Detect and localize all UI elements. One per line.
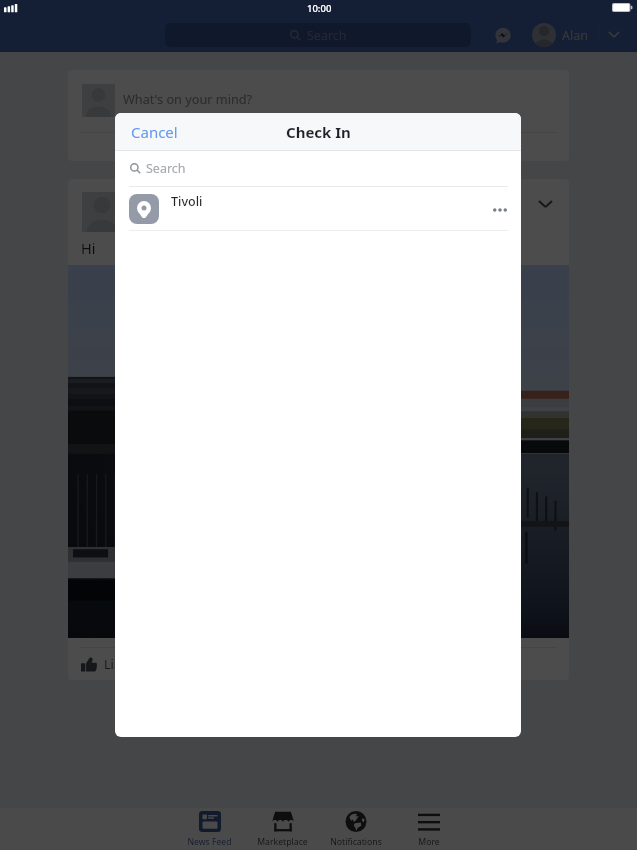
- staticText: Cancel: [131, 122, 178, 142]
- staticText: 10:00: [307, 2, 332, 15]
- staticText: Just now: [131, 215, 175, 230]
- staticText: Notifications: [330, 836, 382, 848]
- staticText: Hi: [81, 238, 96, 258]
- button[interactable]: Notifications: [319, 808, 392, 850]
- button[interactable]: Alan: [532, 18, 588, 52]
- button[interactable]: Account menu: [603, 23, 625, 45]
- button[interactable]: Post options: [533, 192, 557, 216]
- staticText: Tivoli: [171, 193, 203, 210]
- button[interactable]: Search: [130, 151, 521, 186]
- staticText: Search: [307, 27, 347, 44]
- button[interactable]: More: [392, 808, 465, 850]
- staticText: Alan: [131, 194, 163, 213]
- staticText: Check In: [286, 122, 351, 142]
- staticText: Marketplace: [257, 836, 308, 848]
- staticText: Alan: [562, 27, 588, 44]
- staticText: More: [418, 836, 440, 848]
- button[interactable]: Messenger: [492, 24, 514, 46]
- button[interactable]: What's on your mind?: [82, 84, 253, 117]
- button[interactable]: Cancel: [125, 118, 184, 146]
- button[interactable]: Alan: [82, 192, 557, 232]
- button[interactable]: Like: [81, 656, 128, 673]
- staticText: News Feed: [187, 836, 232, 848]
- staticText: Search: [146, 160, 186, 177]
- staticText: Like: [104, 656, 128, 673]
- staticText: What's on your mind?: [123, 90, 253, 107]
- button[interactable]: News Feed: [173, 808, 246, 850]
- button[interactable]: Marketplace: [246, 808, 319, 850]
- button[interactable]: More options: [486, 196, 514, 224]
- button[interactable]: Tivoli: [129, 187, 508, 230]
